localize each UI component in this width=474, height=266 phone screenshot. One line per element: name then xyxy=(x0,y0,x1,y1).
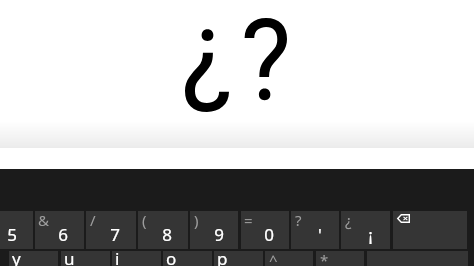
staticText: ( xyxy=(142,210,147,230)
staticText: 6 xyxy=(58,223,68,246)
staticText: 8 xyxy=(162,223,172,246)
button[interactable]: Backspace xyxy=(393,211,467,249)
staticText: ' xyxy=(318,223,322,246)
staticText: o xyxy=(166,247,177,266)
button[interactable] xyxy=(9,251,58,266)
staticText: ¡ xyxy=(368,223,373,246)
button[interactable] xyxy=(35,211,84,249)
button[interactable] xyxy=(190,211,238,249)
button[interactable] xyxy=(86,211,136,249)
staticText: & xyxy=(38,210,49,230)
staticText: ^ xyxy=(269,250,278,266)
button[interactable] xyxy=(291,211,339,249)
staticText: 9 xyxy=(214,223,224,246)
button[interactable] xyxy=(61,251,110,266)
staticText: y xyxy=(12,247,21,266)
staticText: i xyxy=(115,247,120,266)
button[interactable] xyxy=(265,251,313,266)
button[interactable] xyxy=(163,251,212,266)
button[interactable] xyxy=(214,251,263,266)
staticText: u xyxy=(64,247,75,266)
staticText: = xyxy=(244,210,253,230)
staticText: 5 xyxy=(7,223,17,246)
button[interactable] xyxy=(341,211,390,249)
button[interactable] xyxy=(0,211,33,249)
staticText: * xyxy=(320,250,329,266)
staticText: 0 xyxy=(264,223,274,246)
staticText: / xyxy=(90,210,96,230)
staticText: p xyxy=(217,247,228,266)
button[interactable] xyxy=(241,211,289,249)
button[interactable] xyxy=(112,251,161,266)
staticText: ¿ xyxy=(345,210,352,230)
button[interactable] xyxy=(138,211,188,249)
button[interactable] xyxy=(316,251,364,266)
staticText: ) xyxy=(194,210,199,230)
staticText: 7 xyxy=(110,223,120,246)
staticText: ? xyxy=(295,210,302,230)
